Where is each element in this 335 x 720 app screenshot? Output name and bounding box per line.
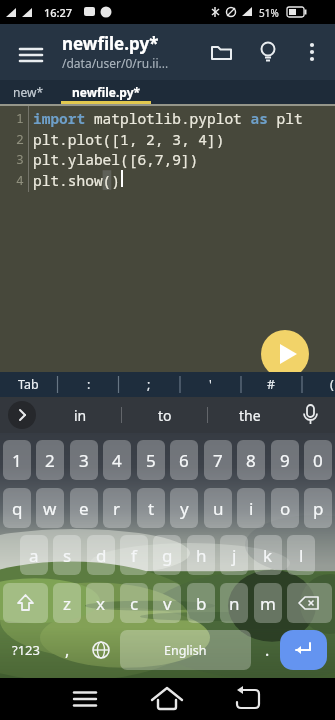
button[interactable]: 9 [271,440,299,480]
staticText: 5 [146,449,156,472]
staticText: o [280,497,291,520]
button[interactable]: l [287,535,315,575]
button[interactable]: o [271,488,299,528]
staticText: 51% [259,6,279,20]
button[interactable]: v [153,583,181,623]
staticText: d [96,544,107,567]
staticText: Tab [18,376,39,393]
button[interactable]: e [70,488,98,528]
button[interactable]: ?123 [3,630,48,670]
button[interactable]: d [87,535,115,575]
button[interactable] [3,583,48,623]
button[interactable]: to [135,397,195,433]
button[interactable]: : [67,372,111,397]
button[interactable] [145,678,189,720]
button[interactable]: h [187,535,215,575]
staticText: 7 [213,449,223,472]
button[interactable]: ; [127,372,171,397]
staticText: English [164,642,207,659]
staticText: z [63,592,71,615]
staticText: k [263,544,273,567]
button[interactable]: # [249,372,293,397]
staticText: c [130,592,139,615]
button[interactable]: r [103,488,131,528]
button[interactable] [296,36,328,68]
button[interactable]: b [187,583,215,623]
button[interactable]: 2 [36,440,64,480]
button[interactable]: , [53,630,81,670]
staticText: s [63,544,72,567]
staticText: e [79,497,89,520]
button[interactable]: new* [0,80,56,104]
button[interactable]: ' [188,372,232,397]
button[interactable]: s [53,535,81,575]
staticText: i [249,497,254,520]
button[interactable]: a [20,535,48,575]
button[interactable]: ( [310,372,335,397]
button[interactable] [87,630,115,670]
button[interactable]: 3 [70,440,98,480]
button[interactable]: 5 [137,440,165,480]
staticText: u [213,497,224,520]
staticText: r [113,497,121,520]
button[interactable] [287,583,332,623]
staticText: w [43,497,57,520]
button[interactable]: y [170,488,198,528]
staticText: 16:27 [44,5,73,20]
staticText: 1 [16,109,24,127]
button[interactable] [10,40,54,70]
staticText: ( [330,376,334,393]
button[interactable]: n [220,583,248,623]
button[interactable]: q [3,488,31,528]
button[interactable]: x [86,583,114,623]
staticText: to [158,406,172,425]
button[interactable]: in [50,397,110,433]
staticText: plt.show() [33,170,120,190]
button[interactable]: g [153,535,181,575]
staticText: the [239,406,261,425]
button[interactable]: Tab [6,372,50,397]
button[interactable]: p [304,488,332,528]
button[interactable] [280,630,327,670]
staticText: 1 [12,449,22,472]
button[interactable]: 6 [170,440,198,480]
button[interactable]: t [137,488,165,528]
staticText: 0 [313,449,323,472]
button[interactable]: . [253,630,281,670]
button[interactable]: 0 [304,440,332,480]
button[interactable]: 1 [3,440,31,480]
button[interactable] [8,401,36,429]
staticText: b [196,592,207,615]
button[interactable]: the [220,397,280,433]
staticText: 6 [179,449,189,472]
button[interactable]: k [254,535,282,575]
button[interactable] [228,678,272,720]
button[interactable]: u [204,488,232,528]
button[interactable]: 7 [204,440,232,480]
staticText: in [74,406,87,425]
staticText: f [131,544,137,567]
button[interactable] [63,678,107,720]
button[interactable]: m [254,583,282,623]
staticText: 2 [45,449,55,472]
staticText: newfile.py* [62,32,159,55]
button[interactable]: f [120,535,148,575]
button[interactable]: English [120,630,251,670]
button[interactable]: 8 [237,440,265,480]
staticText: 8 [246,449,256,472]
button[interactable] [261,330,309,372]
staticText: import matplotlib.pyplot as plt [33,108,303,128]
staticText: m [260,592,276,615]
button[interactable]: newfile.py* [60,80,152,104]
button[interactable] [204,36,240,68]
button[interactable]: w [36,488,64,528]
staticText: ' [209,376,212,393]
staticText: a [29,544,39,567]
button[interactable]: i [237,488,265,528]
button[interactable]: 4 [103,440,131,480]
button[interactable]: c [120,583,148,623]
button[interactable] [250,36,286,68]
button[interactable]: j [220,535,248,575]
staticText: newfile.py* [72,84,141,100]
button[interactable]: z [53,583,81,623]
